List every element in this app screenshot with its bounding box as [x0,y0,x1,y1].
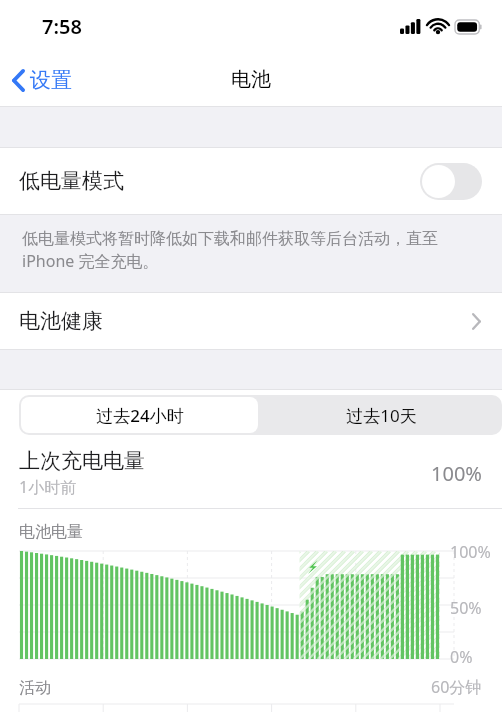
staticText: 低电量模式将暂时降低如下载和邮件获取等后台活动，直至 iPhone 完全充电。 [22,227,480,272]
button[interactable]: 低电量模式 [0,148,502,214]
staticText: 0% [450,646,473,668]
staticText: 活动 [19,678,51,698]
staticText: 低电量模式 [19,168,124,194]
staticText: 100% [450,541,491,563]
staticText: 上次充电电量 [19,448,145,474]
button[interactable]: 过去24小时 [21,397,258,433]
staticText: 电池电量 [19,522,83,542]
staticText: 60分钟 [431,676,482,698]
staticText: 电池健康 [19,308,103,334]
button[interactable]: 低电量模式开关 [420,163,482,200]
staticText: 7:58 [42,13,82,40]
staticText: 过去24小时 [96,404,184,427]
staticText: 电池 [231,67,271,92]
staticText: 过去10天 [346,404,417,427]
button[interactable]: 过去10天 [260,395,502,435]
button[interactable]: 设置 [0,61,84,99]
staticText: 设置 [30,67,72,93]
staticText: 50% [450,597,482,619]
staticText: 1小时前 [19,476,77,498]
button[interactable]: 电池健康 [0,293,502,349]
staticText: 100% [431,460,482,487]
